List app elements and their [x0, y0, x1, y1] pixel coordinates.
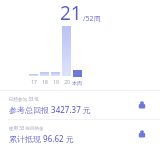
staticText: /52周: [83, 14, 101, 24]
button[interactable]: 18: [39, 72, 50, 86]
button[interactable]: 17: [28, 74, 39, 86]
other: 参考总回报详情: [136, 99, 148, 111]
staticText: 18: [42, 79, 48, 86]
staticText: 19: [53, 79, 59, 86]
button[interactable]: 19: [50, 72, 61, 86]
button[interactable]: 本周: [72, 70, 82, 86]
button[interactable]: 20: [61, 26, 72, 86]
staticText: 使用 33 张目的金: [9, 125, 44, 131]
staticText: 本周: [72, 80, 82, 86]
button[interactable]: 使用 33 张目的金: [0, 120, 160, 148]
staticText: 17: [31, 79, 37, 86]
other: 累计抵现详情: [136, 128, 148, 140]
button[interactable]: 已经参与 33 笔: [0, 91, 160, 119]
staticText: 20: [64, 79, 70, 86]
staticText: 已经参与 33 笔: [9, 96, 39, 102]
staticText: 21: [60, 0, 82, 26]
staticText: 累计抵现 96.62 元: [9, 133, 74, 144]
staticText: 参考总回报 3427.37 元: [9, 104, 91, 115]
